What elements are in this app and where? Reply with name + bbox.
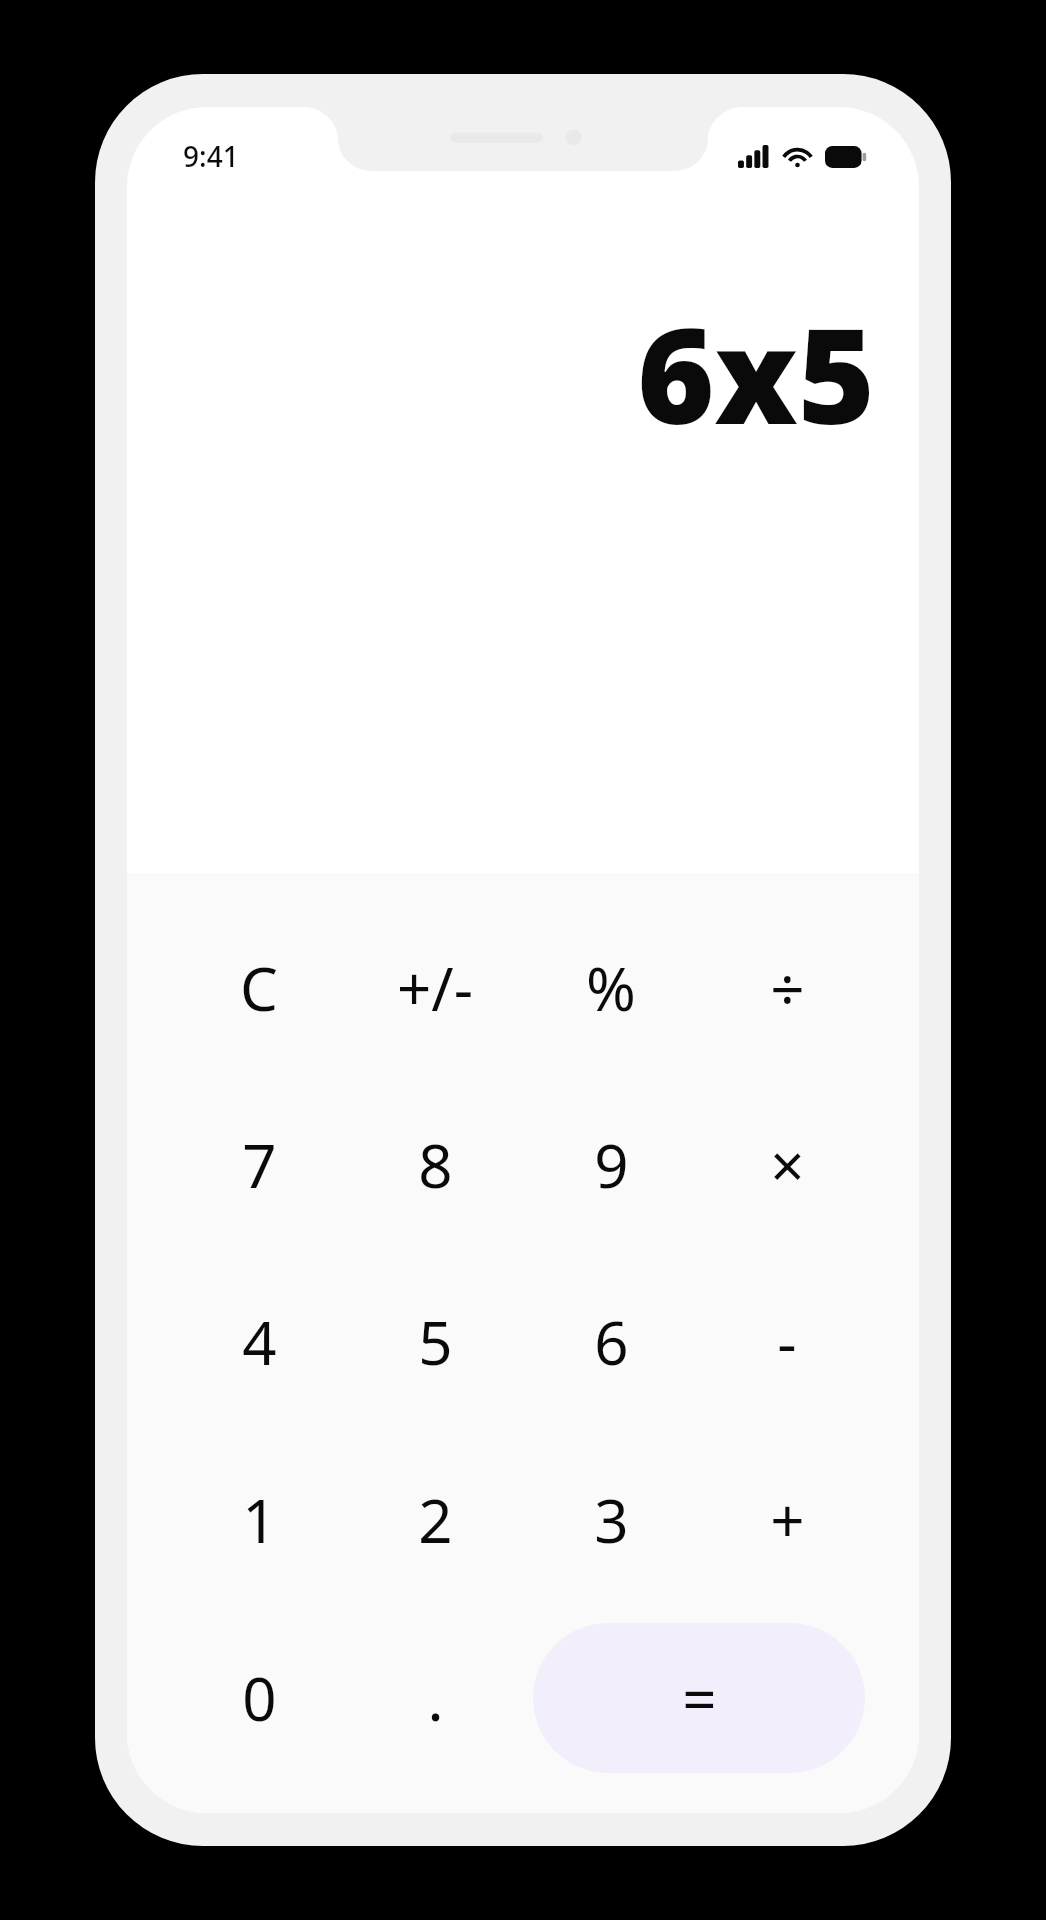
button[interactable]: × <box>699 1076 875 1253</box>
button[interactable]: 8 <box>347 1076 523 1253</box>
button[interactable]: + <box>699 1431 875 1609</box>
staticText: 8 <box>418 1124 453 1206</box>
button[interactable]: 2 <box>347 1431 523 1609</box>
staticText: 4 <box>242 1301 277 1383</box>
button[interactable]: +/- <box>347 899 523 1076</box>
button[interactable]: 6 <box>523 1253 699 1431</box>
other: Wi-Fi <box>782 145 813 168</box>
button[interactable]: = <box>533 1623 865 1773</box>
staticText: 6 <box>594 1301 629 1383</box>
button[interactable]: 0 <box>171 1609 347 1787</box>
button[interactable]: 9 <box>523 1076 699 1253</box>
staticText: % <box>586 947 636 1029</box>
button[interactable]: 7 <box>171 1076 347 1253</box>
button[interactable]: C <box>171 899 347 1076</box>
staticText: . <box>427 1657 444 1739</box>
button[interactable]: 1 <box>171 1431 347 1609</box>
staticText: 9 <box>594 1124 629 1206</box>
button[interactable]: ÷ <box>699 899 875 1076</box>
staticText: 9:41 <box>183 137 239 175</box>
other: Cellular signal <box>738 145 770 168</box>
button[interactable]: % <box>523 899 699 1076</box>
staticText: - <box>777 1301 797 1383</box>
staticText: ÷ <box>770 947 805 1029</box>
button[interactable]: . <box>347 1609 523 1787</box>
button[interactable]: 4 <box>171 1253 347 1431</box>
staticText: + <box>770 1479 805 1561</box>
staticText: = <box>682 1657 717 1739</box>
staticText: × <box>770 1124 805 1206</box>
staticText: 5 <box>418 1301 453 1383</box>
staticText: 7 <box>242 1124 277 1206</box>
staticText: 6x5 <box>637 283 875 463</box>
staticText: +/- <box>397 947 473 1029</box>
button[interactable]: 3 <box>523 1431 699 1609</box>
staticText: 2 <box>418 1479 453 1561</box>
button[interactable]: - <box>699 1253 875 1431</box>
staticText: 1 <box>242 1479 277 1561</box>
other: Battery <box>825 146 867 168</box>
staticText: C <box>240 947 278 1029</box>
button[interactable]: 5 <box>347 1253 523 1431</box>
staticText: 3 <box>594 1479 629 1561</box>
staticText: 0 <box>242 1657 277 1739</box>
